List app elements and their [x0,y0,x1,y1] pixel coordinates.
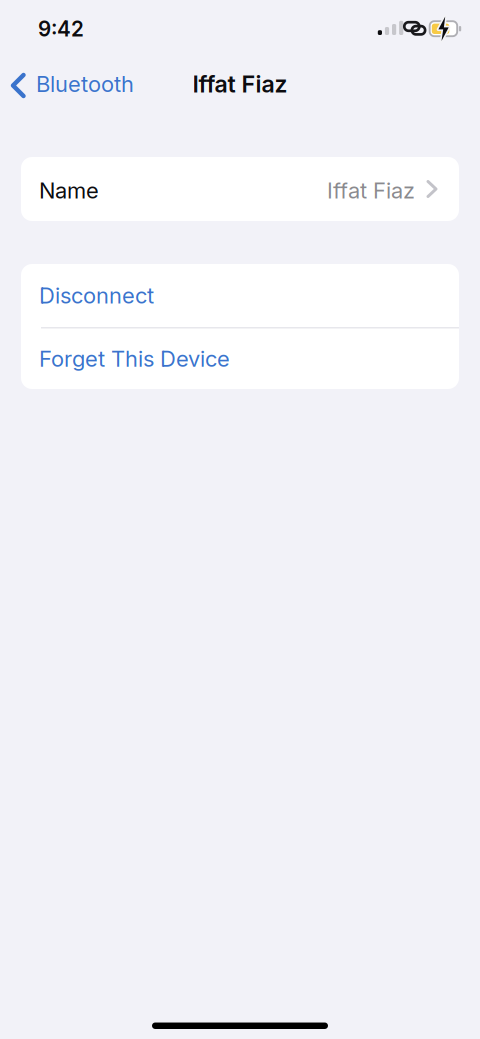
staticText: 9:42 [38,16,84,41]
button[interactable]: Name [21,157,459,221]
button[interactable]: Bluetooth [0,70,134,97]
button[interactable]: Disconnect [21,264,459,327]
staticText: Forget This Device [39,345,230,372]
staticText: Disconnect [39,282,154,309]
button[interactable]: Forget This Device [21,328,459,389]
staticText: Iffat Fiaz [192,70,287,98]
staticText: Iffat Fiaz [327,177,415,204]
staticText: Name [39,177,99,204]
staticText: Bluetooth [36,71,134,97]
